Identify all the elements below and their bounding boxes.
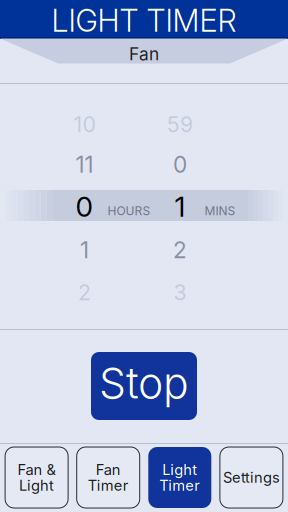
staticText: Fan	[129, 43, 159, 64]
staticText: Fan	[96, 461, 121, 478]
button[interactable]: Fan &	[5, 447, 68, 508]
staticText: Settings	[223, 469, 280, 486]
staticText: Timer	[88, 476, 129, 494]
button[interactable]: Stop	[91, 352, 197, 420]
staticText: LIGHT TIMER	[51, 2, 236, 39]
staticText: 0	[173, 151, 187, 178]
staticText: 3	[173, 280, 186, 305]
staticText: Light	[19, 476, 54, 494]
staticText: 0	[75, 190, 92, 223]
staticText: 10	[73, 112, 95, 137]
button[interactable]: Light	[148, 447, 211, 508]
staticText: HOURS	[107, 204, 150, 218]
staticText: 1	[80, 236, 89, 264]
staticText: Timer	[159, 476, 200, 494]
staticText: Light	[162, 461, 197, 478]
staticText: MINS	[204, 204, 235, 218]
staticText: 2	[173, 236, 187, 264]
staticText: 1	[174, 190, 185, 223]
staticText: 11	[75, 151, 93, 178]
staticText: 2	[78, 280, 91, 305]
staticText: 59	[167, 112, 193, 137]
staticText: Fan &	[18, 461, 56, 478]
button[interactable]: Fan	[77, 447, 140, 508]
staticText: Stop	[99, 357, 189, 409]
button[interactable]: Settings	[220, 447, 283, 508]
